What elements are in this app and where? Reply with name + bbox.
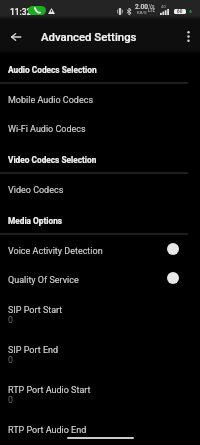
staticText: RTP Port Audio Start xyxy=(8,385,91,396)
button[interactable]: Video Codecs xyxy=(0,176,200,205)
staticText: 11:32 xyxy=(10,7,32,17)
staticText: Advanced Settings xyxy=(41,30,137,43)
staticText: 0 xyxy=(8,395,13,405)
staticText: Video Codecs Selection xyxy=(8,155,97,165)
staticText: 4G xyxy=(161,4,167,9)
staticText: KB/S xyxy=(137,10,147,15)
staticText: LTE xyxy=(148,8,156,13)
button[interactable]: Mobile Audio Codecs xyxy=(0,86,200,115)
staticText: RTP Port Audio End xyxy=(8,425,87,436)
button[interactable]: RTP Port Audio End xyxy=(0,415,200,445)
staticText: Video Codecs xyxy=(8,185,64,196)
staticText: Wi-Fi Audio Codecs xyxy=(8,124,86,135)
staticText: Quality Of Service xyxy=(8,275,167,286)
staticText: Media Options xyxy=(8,216,63,226)
staticText: Audio Codecs Selection xyxy=(8,65,97,75)
button[interactable]: Voice Activity Detection xyxy=(0,237,200,266)
staticText: Vo xyxy=(149,4,155,9)
button[interactable]: RTP Port Audio Start xyxy=(0,375,200,415)
button[interactable]: Wi-Fi Audio Codecs xyxy=(0,115,200,144)
button[interactable]: Back xyxy=(4,25,28,49)
staticText: SIP Port End xyxy=(8,345,59,356)
staticText: Voice Activity Detection xyxy=(8,246,167,257)
staticText: 0 xyxy=(8,355,13,365)
button[interactable]: More options xyxy=(178,26,198,46)
staticText: SIP Port Start xyxy=(8,305,63,316)
staticText: Mobile Audio Codecs xyxy=(8,95,94,106)
button[interactable]: Quality Of Service xyxy=(0,266,200,295)
staticText: 2.00 xyxy=(135,3,148,11)
staticText: 0 xyxy=(8,315,13,325)
button[interactable]: SIP Port Start xyxy=(0,295,200,335)
button[interactable]: SIP Port End xyxy=(0,335,200,375)
staticText: 60 xyxy=(177,9,183,14)
